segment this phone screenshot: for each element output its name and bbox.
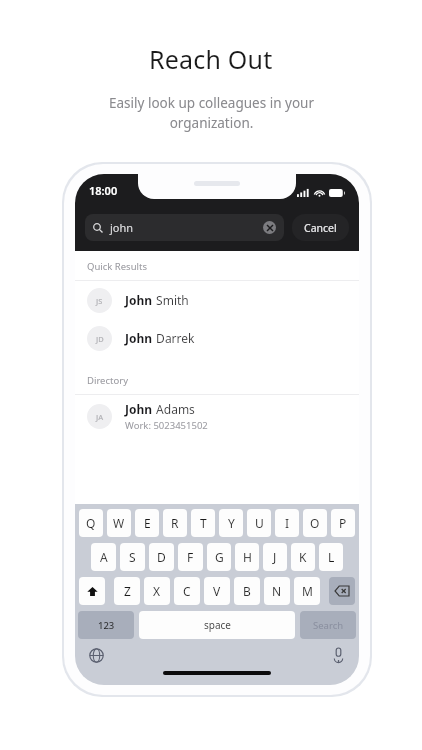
button[interactable]: S [120,543,145,571]
staticText: S [129,549,136,565]
staticText: T [200,515,207,531]
staticText: Directory [87,374,128,387]
staticText: G [215,549,224,565]
staticText: john [110,220,134,235]
staticText: M [302,583,313,599]
button[interactable]: Y [219,509,243,537]
staticText: A [100,549,108,565]
staticText: V [213,583,221,599]
button[interactable]: W [107,509,131,537]
button[interactable]: Backspace [329,577,355,605]
staticText: Reach Out [149,42,273,76]
staticText: Z [124,583,131,599]
staticText: Adams [153,401,195,417]
staticText: Darrek [153,330,195,346]
button[interactable]: JD [75,319,359,357]
staticText: H [243,549,252,565]
button[interactable]: U [247,509,271,537]
button[interactable]: JS [75,281,359,319]
button[interactable]: Cancel [292,214,349,241]
staticText: JD [96,334,104,344]
button[interactable]: Change keyboard [87,646,105,664]
button[interactable]: D [149,543,174,571]
button[interactable]: Q [79,509,103,537]
button[interactable]: Dictate [329,646,347,664]
staticText: B [243,583,251,599]
staticText: O [310,515,320,531]
button[interactable]: F [178,543,203,571]
staticText: P [339,515,347,531]
button[interactable]: J [263,543,287,571]
staticText: Easily look up colleagues in your organi… [109,94,314,132]
staticText: I [285,515,290,531]
staticText: C [183,583,191,599]
button[interactable]: X [144,577,170,605]
button[interactable]: JA [75,395,359,437]
staticText: 18:00 [89,183,118,198]
button[interactable]: Search [300,611,356,639]
staticText: John [125,401,153,417]
button[interactable]: Shift [79,577,105,605]
staticText: R [171,515,179,531]
staticText: Smith [153,292,189,308]
staticText: space [204,618,231,632]
staticText: Y [228,515,235,531]
staticText: X [153,583,161,599]
button[interactable]: M [294,577,320,605]
staticText: John [125,330,153,346]
button[interactable]: T [191,509,215,537]
button[interactable]: Clear search [263,221,276,234]
staticText: U [255,515,264,531]
button[interactable]: V [204,577,230,605]
button[interactable]: C [174,577,200,605]
button[interactable]: Z [114,577,140,605]
staticText: Q [86,515,96,531]
staticText: W [113,515,125,531]
button[interactable]: E [135,509,159,537]
button[interactable]: G [207,543,231,571]
staticText: N [272,583,282,599]
button[interactable]: H [235,543,259,571]
button[interactable]: john [85,214,284,241]
staticText: JA [96,412,104,422]
staticText: JS [96,296,103,306]
staticText: D [157,549,166,565]
button[interactable]: O [303,509,327,537]
staticText: 123 [98,619,115,632]
button[interactable]: L [319,543,343,571]
staticText: Cancel [304,221,337,235]
staticText: K [299,549,307,565]
button[interactable]: R [163,509,187,537]
button[interactable]: B [234,577,260,605]
button[interactable]: N [264,577,290,605]
staticText: E [144,515,151,531]
staticText: J [273,549,277,565]
staticText: F [187,549,194,565]
staticText: Search [313,619,344,632]
button[interactable]: A [91,543,116,571]
button[interactable]: P [331,509,355,537]
staticText: L [328,549,335,565]
staticText: John [125,292,153,308]
button[interactable]: I [275,509,299,537]
staticText: Quick Results [87,260,147,273]
button[interactable]: K [291,543,315,571]
staticText: Work: 5023451502 [125,419,208,432]
button[interactable]: 123 [78,611,134,639]
button[interactable]: space [139,611,295,639]
